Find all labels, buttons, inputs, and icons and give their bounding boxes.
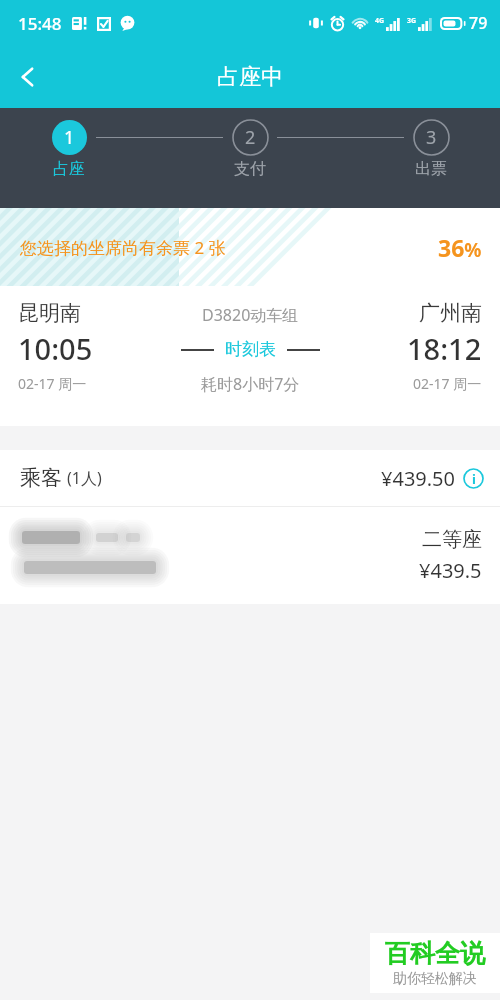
staticText: 3 [426, 125, 437, 150]
staticText: 79 [469, 12, 488, 34]
staticText: (1人) [67, 467, 102, 489]
staticText: 支付 [234, 159, 266, 179]
staticText: 18:12 [407, 329, 482, 368]
button[interactable]: Price details [463, 468, 484, 489]
button[interactable]: 2 [223, 119, 277, 179]
staticText: 占座中 [217, 63, 283, 91]
staticText: 10:05 [18, 329, 93, 368]
staticText: 占座 [53, 159, 85, 179]
staticText: 2 [245, 125, 256, 150]
staticText: i [472, 470, 476, 488]
staticText: 耗时8小时7分 [201, 373, 300, 395]
staticText: 1 [64, 125, 75, 150]
staticText: 15:48 [18, 12, 62, 35]
staticText: 02-17 周一 [413, 374, 482, 393]
staticText: 二等座 [422, 527, 482, 552]
staticText: 助你轻松解决 [393, 970, 477, 988]
staticText: ¥439.5 [419, 557, 482, 584]
staticText: 乘客 [20, 465, 62, 491]
button[interactable]: 时刻表 [181, 339, 320, 360]
button[interactable]: 二等座 [0, 507, 500, 604]
staticText: 广州南 [419, 300, 482, 326]
button[interactable]: Back [0, 49, 56, 105]
button[interactable]: 3 [404, 119, 458, 179]
staticText: 出票 [415, 159, 447, 179]
staticText: 02-17 周一 [18, 374, 87, 393]
staticText: D3820动车组 [202, 304, 299, 326]
button[interactable]: 1 [42, 119, 96, 179]
button[interactable]: 乘客 [0, 450, 500, 506]
staticText: 昆明南 [18, 300, 81, 326]
staticText: ¥439.50 [381, 465, 455, 492]
staticText: 3G [407, 16, 417, 26]
staticText: 时刻表 [225, 339, 276, 360]
staticText: 36% [438, 232, 482, 263]
staticText: 4G [375, 16, 385, 26]
staticText: 百科全说 [385, 938, 485, 969]
staticText: 您选择的坐席尚有余票 2 张 [20, 236, 226, 259]
